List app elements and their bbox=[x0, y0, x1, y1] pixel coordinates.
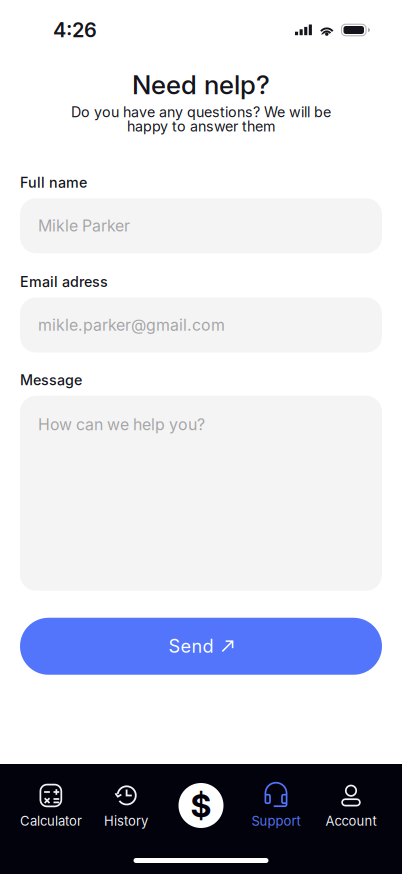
staticText: Need nelp? bbox=[132, 69, 270, 100]
staticText: History bbox=[104, 813, 148, 829]
staticText: Mikle Parker bbox=[38, 216, 130, 235]
staticText: Support bbox=[251, 813, 300, 829]
staticText: Message bbox=[20, 371, 82, 389]
staticText: Do you have any questions? We will be bbox=[71, 103, 331, 121]
button[interactable]: How can we help you? bbox=[20, 396, 382, 591]
button[interactable]: Send bbox=[20, 618, 382, 675]
button[interactable]: Mikle Parker bbox=[20, 198, 382, 253]
staticText: Send bbox=[169, 635, 214, 657]
button[interactable]: mikle.parker@gmail.com bbox=[20, 297, 382, 352]
button[interactable]: History bbox=[88, 784, 163, 829]
button[interactable]: Calculator bbox=[13, 784, 88, 829]
button[interactable]: Support bbox=[238, 784, 313, 829]
button[interactable]: Payments bbox=[178, 783, 223, 828]
staticText: Full name bbox=[20, 174, 87, 191]
button[interactable]: Account bbox=[313, 784, 388, 829]
staticText: 4:26 bbox=[53, 18, 97, 42]
staticText: Email adress bbox=[20, 273, 108, 290]
staticText: Calculator bbox=[20, 813, 82, 829]
staticText: $ bbox=[190, 786, 211, 825]
staticText: happy to answer them bbox=[127, 118, 275, 135]
staticText: How can we help you? bbox=[38, 415, 205, 434]
staticText: Account bbox=[325, 813, 376, 829]
staticText: mikle.parker@gmail.com bbox=[38, 315, 225, 335]
